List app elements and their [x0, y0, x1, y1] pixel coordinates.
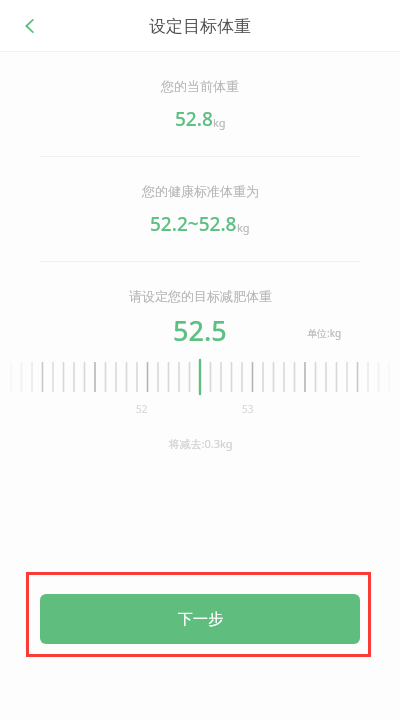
- staticText: 设定目标体重: [149, 16, 251, 37]
- staticText: 52: [136, 402, 148, 416]
- staticText: kg: [213, 115, 226, 130]
- staticText: 52.8: [175, 106, 213, 132]
- button[interactable]: 下一步: [40, 594, 360, 644]
- button[interactable]: Weight scale: [0, 352, 400, 420]
- staticText: 53: [242, 402, 254, 416]
- staticText: 52.5: [173, 312, 227, 346]
- staticText: 将减去:0.3kg: [168, 436, 233, 451]
- staticText: 您的当前体重: [161, 78, 239, 94]
- button[interactable]: Back: [8, 4, 52, 48]
- staticText: 单位:kg: [307, 326, 342, 340]
- staticText: 52.2~52.8: [150, 211, 237, 237]
- staticText: 下一步: [178, 610, 223, 629]
- staticText: 请设定您的目标减肥体重: [129, 288, 272, 304]
- staticText: 您的健康标准体重为: [142, 183, 259, 199]
- staticText: kg: [237, 220, 250, 235]
